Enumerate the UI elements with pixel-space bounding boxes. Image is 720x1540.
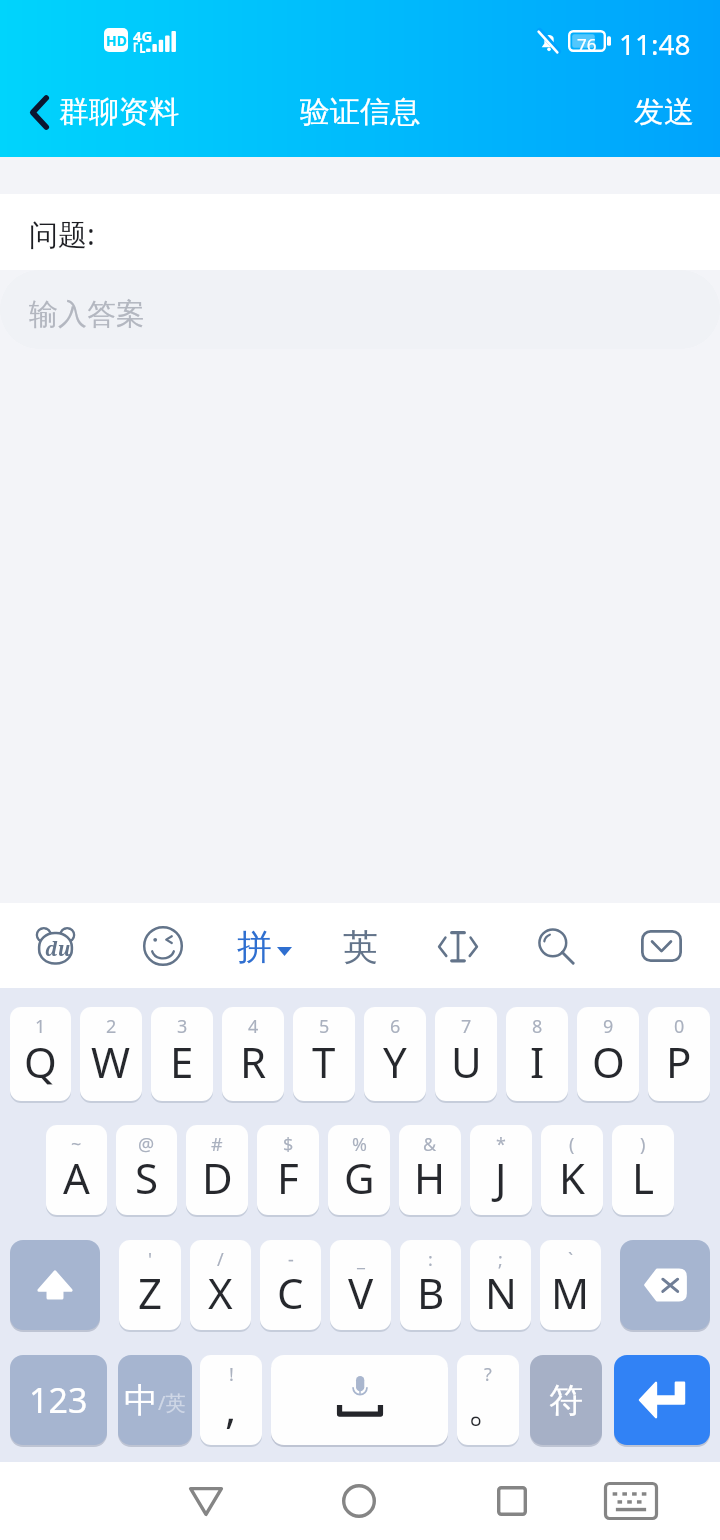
button[interactable]: English input mode	[312, 903, 408, 988]
button[interactable]: 群聊资料	[0, 83, 195, 141]
button[interactable]: :	[400, 1240, 461, 1330]
button[interactable]: `	[540, 1240, 601, 1330]
button[interactable]: 9	[577, 1007, 639, 1101]
button[interactable]: _	[330, 1240, 391, 1330]
staticText: 。	[467, 1381, 509, 1434]
button[interactable]: (	[541, 1125, 603, 1215]
staticText: E	[170, 1033, 194, 1090]
staticText: V	[348, 1264, 374, 1321]
staticText: 1	[35, 1014, 46, 1039]
button[interactable]: @	[116, 1125, 177, 1215]
staticText: 发送	[634, 93, 694, 131]
button[interactable]: /	[190, 1240, 251, 1330]
staticText: 5	[319, 1014, 330, 1039]
staticText: 输入答案	[29, 296, 145, 333]
staticText: F	[277, 1149, 299, 1206]
button[interactable]: 2	[80, 1007, 142, 1101]
staticText: du	[45, 936, 71, 962]
button[interactable]: 发送	[610, 83, 720, 141]
button[interactable]: 0	[648, 1007, 710, 1101]
button[interactable]: ?	[457, 1355, 519, 1445]
staticText: U	[451, 1033, 482, 1090]
button[interactable]: Enter	[614, 1355, 710, 1445]
staticText: H	[414, 1149, 446, 1206]
staticText: X	[208, 1264, 233, 1321]
staticText: 验证信息	[300, 93, 420, 131]
button[interactable]: 8	[506, 1007, 568, 1101]
button[interactable]: Keyboard	[591, 1462, 671, 1540]
staticText: ,	[225, 1379, 237, 1436]
button[interactable]: Home	[309, 1462, 409, 1540]
staticText: 英	[343, 925, 378, 969]
staticText: (	[569, 1132, 575, 1157]
staticText: J	[495, 1149, 507, 1206]
staticText: L	[632, 1149, 655, 1206]
button[interactable]: &	[399, 1125, 461, 1215]
button[interactable]: Move cursor	[410, 903, 506, 988]
staticText: 11:48	[619, 25, 691, 63]
staticText: '	[148, 1247, 153, 1272]
staticText: 4G	[133, 26, 153, 46]
button[interactable]: *	[470, 1125, 532, 1215]
staticText: R	[240, 1033, 267, 1090]
staticText: W	[91, 1033, 131, 1090]
button[interactable]: ;	[470, 1240, 531, 1330]
button[interactable]: Symbols	[530, 1355, 602, 1445]
button[interactable]: Baidu input settings	[10, 903, 106, 988]
button[interactable]: '	[119, 1240, 181, 1330]
staticText: Q	[24, 1033, 57, 1090]
button[interactable]: Pinyin input mode	[216, 903, 312, 988]
button[interactable]: Recent apps	[462, 1462, 562, 1540]
button[interactable]: 6	[364, 1007, 426, 1101]
button[interactable]: #	[186, 1125, 248, 1215]
staticText: 123	[29, 1377, 88, 1423]
staticText: G	[344, 1149, 375, 1206]
button[interactable]: $	[257, 1125, 319, 1215]
button[interactable]: Backspace	[620, 1240, 710, 1330]
staticText: HD	[106, 31, 127, 50]
staticText: A	[63, 1149, 90, 1206]
staticText: /	[217, 1247, 224, 1272]
staticText: 2	[106, 1014, 117, 1039]
button[interactable]: ~	[46, 1125, 107, 1215]
staticText: P	[666, 1033, 692, 1090]
staticText: ?	[484, 1362, 492, 1387]
button[interactable]: 1	[10, 1007, 71, 1101]
button[interactable]: 输入答案	[0, 270, 720, 349]
button[interactable]: Chinese English toggle	[118, 1355, 192, 1445]
staticText: 8	[532, 1014, 543, 1039]
button[interactable]: 7	[435, 1007, 497, 1101]
staticText: ;	[498, 1247, 503, 1272]
button[interactable]: -	[260, 1240, 321, 1330]
staticText: 问题:	[29, 214, 95, 254]
button[interactable]: Back	[156, 1462, 256, 1540]
staticText: N	[485, 1264, 517, 1321]
staticText: 中	[124, 1379, 158, 1422]
button[interactable]: )	[612, 1125, 674, 1215]
button[interactable]: Search	[508, 903, 604, 988]
staticText: _	[357, 1247, 365, 1272]
button[interactable]: 4	[222, 1007, 284, 1101]
button[interactable]: Shift	[10, 1240, 100, 1330]
staticText: !	[229, 1362, 234, 1387]
staticText: O	[592, 1033, 625, 1090]
button[interactable]: %	[328, 1125, 390, 1215]
staticText: 符	[549, 1379, 583, 1422]
staticText: @	[138, 1132, 155, 1157]
button[interactable]: !	[200, 1355, 262, 1445]
staticText: &	[423, 1132, 437, 1157]
button[interactable]: Space	[271, 1355, 448, 1445]
staticText: #	[211, 1132, 223, 1157]
button[interactable]: 123	[10, 1355, 107, 1445]
button[interactable]: 3	[151, 1007, 213, 1101]
button[interactable]: 5	[293, 1007, 355, 1101]
staticText: 群聊资料	[59, 93, 179, 131]
staticText: 7	[461, 1014, 472, 1039]
staticText: C	[277, 1264, 304, 1321]
button[interactable]: Hide keyboard	[613, 903, 709, 988]
staticText: 拼	[237, 925, 272, 969]
staticText: %	[352, 1132, 367, 1157]
button[interactable]: Emoji	[115, 903, 211, 988]
staticText: 4	[248, 1014, 259, 1039]
staticText: D	[202, 1149, 233, 1206]
